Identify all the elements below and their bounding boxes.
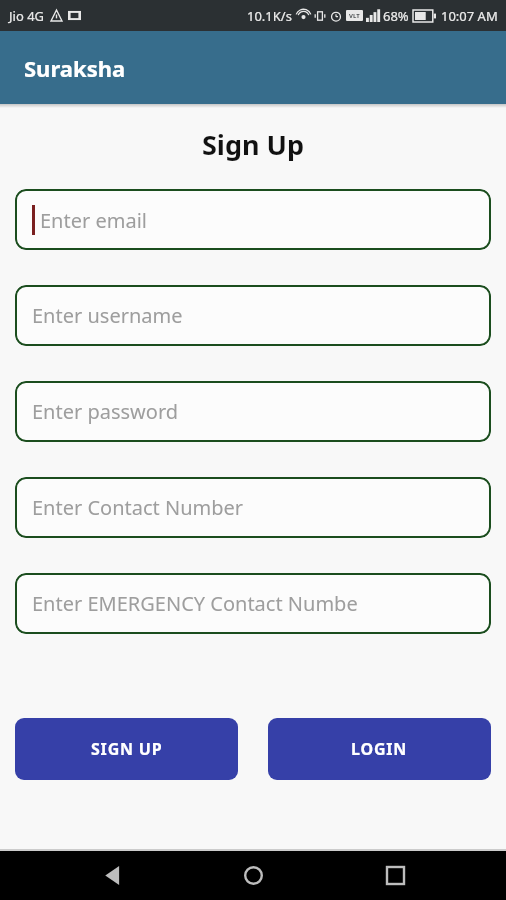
staticText: LOGIN [351, 738, 408, 760]
staticText: VLT [349, 12, 360, 20]
button[interactable]: Enter EMERGENCY Contact Numbe [15, 573, 491, 634]
button[interactable]: Back [82, 851, 142, 900]
staticText: 10:07 AM [441, 7, 498, 25]
button[interactable]: SIGN UP [15, 718, 238, 780]
button[interactable]: Enter Contact Number [15, 477, 491, 538]
button[interactable]: Enter username [15, 285, 491, 346]
staticText: Enter email [40, 207, 147, 234]
button[interactable]: Home [223, 851, 283, 900]
button[interactable]: Enter password [15, 381, 491, 442]
staticText: 68% [383, 7, 409, 25]
staticText: 10.1K/s [247, 7, 292, 25]
staticText: SIGN UP [91, 738, 163, 760]
staticText: Enter username [32, 302, 183, 329]
staticText: Enter EMERGENCY Contact Numbe [32, 590, 358, 617]
staticText: Enter Contact Number [32, 494, 244, 521]
button[interactable]: Recent apps [365, 851, 425, 900]
button[interactable]: LOGIN [268, 718, 491, 780]
staticText: Sign Up [0, 126, 506, 163]
staticText: Suraksha [24, 53, 126, 83]
staticText: Enter password [32, 398, 179, 425]
button[interactable]: Enter email [15, 189, 491, 250]
staticText: Jio 4G [9, 7, 45, 25]
